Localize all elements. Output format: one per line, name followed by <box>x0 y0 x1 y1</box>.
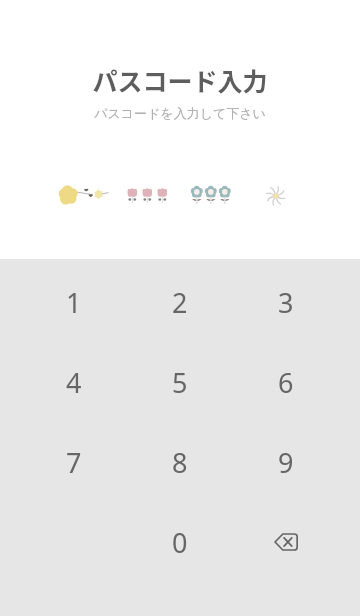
button[interactable]: 3 <box>233 262 339 342</box>
button[interactable]: 2 <box>127 262 233 342</box>
staticText: 3 <box>278 284 294 321</box>
staticText: 2 <box>172 284 188 321</box>
staticText: 9 <box>278 444 294 481</box>
button[interactable]: 0 <box>127 502 233 582</box>
staticText: 7 <box>66 444 82 481</box>
staticText: 4 <box>66 364 82 401</box>
button[interactable]: 6 <box>233 342 339 422</box>
staticText: パスコード入力 <box>92 62 268 98</box>
staticText: パスコードを入力して下さい <box>94 105 266 121</box>
button[interactable]: 9 <box>233 422 339 502</box>
staticText: 1 <box>66 284 82 321</box>
button[interactable]: 7 <box>21 422 127 502</box>
button[interactable]: Delete <box>233 502 339 582</box>
staticText: 0 <box>172 524 188 561</box>
staticText: 6 <box>278 364 294 401</box>
staticText: 5 <box>172 364 188 401</box>
button[interactable]: 4 <box>21 342 127 422</box>
button[interactable]: 8 <box>127 422 233 502</box>
staticText: 8 <box>172 444 188 481</box>
button[interactable]: 5 <box>127 342 233 422</box>
button[interactable]: 1 <box>21 262 127 342</box>
